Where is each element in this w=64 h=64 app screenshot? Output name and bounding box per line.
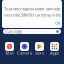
button[interactable]: OK xyxy=(54,20,61,27)
staticText: o xyxy=(9,28,12,35)
staticText: Camera xyxy=(17,50,32,56)
staticText: g xyxy=(15,28,18,35)
staticText: Mail xyxy=(5,50,13,56)
staticText: G xyxy=(5,28,9,35)
staticText: Apps xyxy=(50,50,59,56)
staticText: Store xyxy=(35,50,44,56)
button[interactable]: Apps xyxy=(47,42,62,55)
staticText: o xyxy=(12,28,15,35)
button[interactable]: Store xyxy=(32,42,47,55)
button[interactable]: G xyxy=(3,29,61,34)
button[interactable]: Camera xyxy=(17,42,32,55)
staticText: e xyxy=(19,28,22,35)
button[interactable]: Mail xyxy=(2,42,17,55)
staticText: OK xyxy=(55,21,60,26)
staticText: insert the SIM/SD card tray in the xyxy=(4,12,61,18)
staticText: To protect against water damage, xyxy=(4,6,61,11)
staticText: l xyxy=(18,28,19,35)
